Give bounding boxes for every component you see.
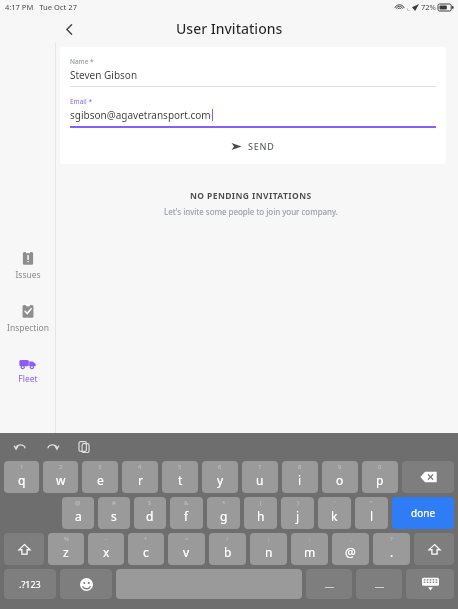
staticText: s: [111, 508, 117, 524]
button[interactable]: ": [355, 497, 388, 529]
button[interactable]: =: [168, 533, 205, 565]
staticText: m: [304, 544, 316, 560]
staticText: 9: [338, 463, 342, 471]
button[interactable]: ?: [373, 533, 410, 565]
staticText: 0: [378, 463, 382, 471]
staticText: Fleet: [18, 373, 38, 385]
button[interactable]: ,: [332, 533, 369, 565]
staticText: :: [309, 535, 311, 543]
staticText: =: [185, 535, 189, 543]
staticText: *: [222, 499, 226, 507]
button[interactable]: 0: [362, 461, 398, 493]
staticText: %: [64, 535, 69, 543]
staticText: o: [336, 472, 344, 488]
staticText: 2: [59, 463, 63, 471]
staticText: ⌞: [407, 4, 410, 11]
button[interactable]: .?123: [4, 569, 56, 599]
staticText: .: [390, 544, 394, 560]
staticText: q: [18, 472, 26, 488]
button[interactable]: done: [392, 497, 454, 529]
staticText: $: [148, 499, 152, 507]
button[interactable]: Undo: [10, 437, 30, 457]
staticText: d: [146, 508, 154, 524]
staticText: sgibson@agavetransport.com: [70, 108, 211, 122]
staticText: k: [331, 508, 338, 524]
button[interactable]: +: [128, 533, 164, 565]
button[interactable]: 4: [122, 461, 158, 493]
staticText: h: [257, 508, 265, 524]
button[interactable]: 2: [43, 461, 78, 493]
button[interactable]: Key: [356, 569, 402, 599]
button[interactable]: Redo: [42, 437, 62, 457]
button[interactable]: ): [281, 497, 314, 529]
staticText: i: [298, 472, 302, 488]
button[interactable]: ;: [250, 533, 287, 565]
staticText: v: [183, 544, 190, 560]
staticText: SEND: [248, 140, 275, 152]
button[interactable]: ': [318, 497, 351, 529]
button[interactable]: (: [244, 497, 277, 529]
button[interactable]: 9: [322, 461, 358, 493]
staticText: z: [63, 544, 69, 560]
button[interactable]: $: [134, 497, 166, 529]
staticText: r: [138, 472, 143, 488]
staticText: User Invitations: [176, 19, 283, 38]
staticText: ': [334, 499, 336, 507]
button[interactable]: Backspace: [402, 461, 454, 493]
button[interactable]: Issues: [0, 248, 55, 283]
staticText: +: [144, 535, 148, 543]
staticText: u: [256, 472, 264, 488]
staticText: y: [217, 472, 224, 488]
button[interactable]: SEND: [70, 134, 436, 158]
staticText: g: [220, 508, 228, 524]
button[interactable]: Shift: [414, 533, 454, 565]
button[interactable]: Emoji: [60, 569, 112, 599]
staticText: t: [178, 472, 183, 488]
button[interactable]: Paste: [74, 437, 94, 457]
button[interactable]: Inspection: [0, 301, 55, 336]
button[interactable]: Fleet: [0, 354, 55, 387]
staticText: 1: [20, 463, 24, 471]
staticText: ): [297, 499, 299, 507]
button[interactable]: 1: [4, 461, 39, 493]
staticText: j: [296, 508, 300, 524]
button[interactable]: @: [62, 497, 94, 529]
button[interactable]: -: [88, 533, 124, 565]
button[interactable]: 5: [162, 461, 198, 493]
button[interactable]: Shift: [4, 533, 44, 565]
button[interactable]: Hide keyboard: [406, 569, 454, 599]
staticText: c: [143, 544, 149, 560]
staticText: 7: [258, 463, 262, 471]
staticText: &: [184, 499, 189, 507]
staticText: ,: [350, 535, 352, 543]
button[interactable]: &: [170, 497, 203, 529]
staticText: done: [411, 506, 436, 520]
staticText: Inspection: [7, 322, 49, 334]
staticText: 72%: [421, 2, 436, 12]
staticText: Name *: [70, 57, 94, 66]
button[interactable]: %: [48, 533, 84, 565]
button[interactable]: Key: [306, 569, 352, 599]
staticText: a: [75, 508, 82, 524]
staticText: NO PENDING INVITATIONS: [190, 190, 312, 202]
button[interactable]: 8: [282, 461, 318, 493]
staticText: Let's invite some people to join your co…: [164, 206, 338, 217]
staticText: (: [260, 499, 262, 507]
staticText: /: [226, 535, 229, 543]
button[interactable]: 3: [82, 461, 118, 493]
staticText: #: [112, 499, 116, 507]
button[interactable]: *: [207, 497, 240, 529]
staticText: w: [56, 472, 66, 488]
button[interactable]: #: [98, 497, 130, 529]
button[interactable]: 6: [202, 461, 238, 493]
staticText: e: [97, 472, 104, 488]
staticText: l: [370, 508, 374, 524]
button[interactable]: /: [209, 533, 246, 565]
staticText: -: [105, 535, 107, 543]
staticText: ?: [390, 535, 393, 543]
staticText: Steven Gibson: [70, 68, 138, 82]
button[interactable]: :: [291, 533, 328, 565]
button[interactable]: Back: [55, 15, 83, 43]
button[interactable]: 7: [242, 461, 278, 493]
